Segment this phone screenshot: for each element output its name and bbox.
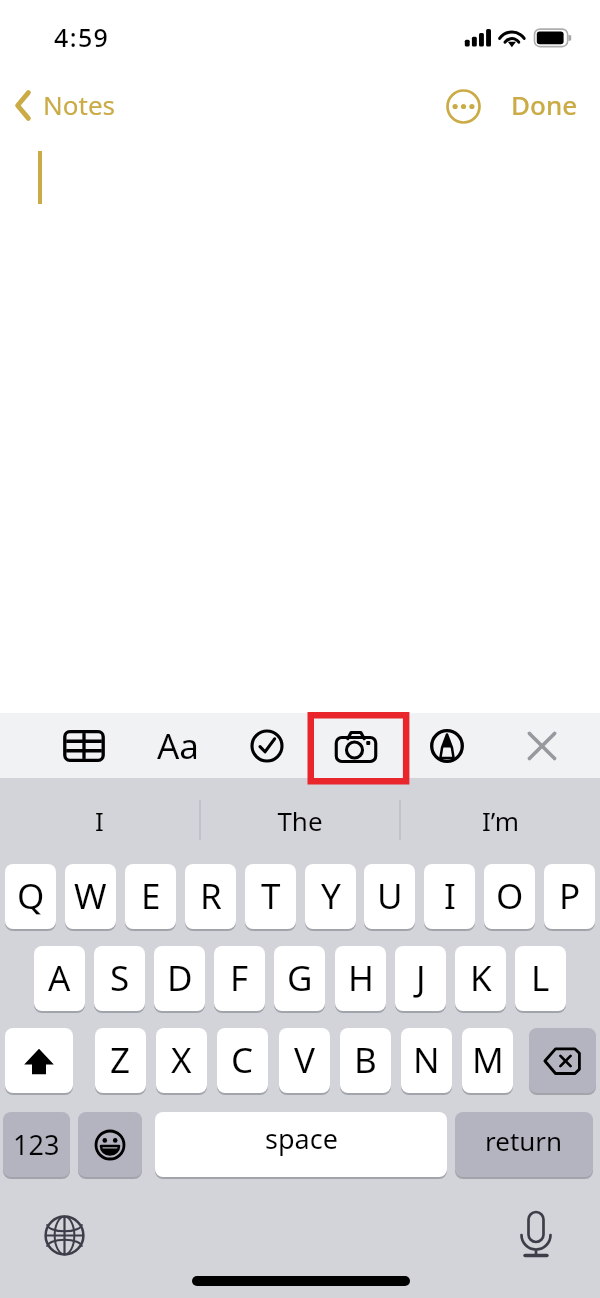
staticText: X <box>171 1036 192 1084</box>
staticText: The <box>277 803 323 838</box>
button[interactable]: I’m <box>400 778 600 862</box>
staticText: K <box>470 954 492 1002</box>
button[interactable]: K <box>455 946 506 1011</box>
button[interactable]: H <box>335 946 386 1011</box>
staticText: G <box>287 954 313 1002</box>
staticText: M <box>472 1036 504 1084</box>
staticText: H <box>348 954 374 1002</box>
staticText: S <box>110 954 130 1002</box>
button[interactable]: Z <box>95 1028 146 1093</box>
button[interactable]: C <box>217 1028 268 1093</box>
staticText: Notes <box>43 87 115 122</box>
button[interactable]: Next keyboard <box>44 1215 85 1256</box>
button[interactable]: A <box>34 946 85 1011</box>
button[interactable]: 123 <box>3 1112 70 1177</box>
button[interactable]: E <box>125 864 176 929</box>
staticText: R <box>200 872 222 920</box>
staticText: L <box>531 954 550 1002</box>
button[interactable]: V <box>279 1028 330 1093</box>
staticText: A <box>48 954 71 1002</box>
button[interactable]: N <box>401 1028 452 1093</box>
button[interactable]: J <box>395 946 446 1011</box>
staticText: B <box>354 1036 377 1084</box>
button[interactable]: Backspace <box>529 1028 596 1093</box>
button[interactable]: I <box>424 864 475 929</box>
button[interactable]: Done <box>511 78 578 130</box>
button[interactable]: Emoji <box>78 1112 142 1177</box>
staticText: U <box>377 872 403 920</box>
button[interactable]: Markup <box>421 713 473 778</box>
button[interactable]: D <box>154 946 205 1011</box>
button[interactable]: Shift <box>5 1028 73 1093</box>
staticText: V <box>294 1036 316 1084</box>
staticText: 4:59 <box>54 20 110 54</box>
staticText: Q <box>17 872 45 920</box>
staticText: P <box>559 872 581 920</box>
button[interactable]: More options <box>441 84 486 129</box>
button[interactable]: Y <box>305 864 356 929</box>
button[interactable]: Camera <box>330 713 382 778</box>
button[interactable]: P <box>544 864 595 929</box>
staticText: D <box>167 954 193 1002</box>
button[interactable]: M <box>462 1028 513 1093</box>
button[interactable]: Notes <box>15 78 115 130</box>
staticText: E <box>141 872 161 920</box>
button[interactable]: X <box>156 1028 207 1093</box>
staticText: Y <box>321 872 341 920</box>
staticText: I’m <box>482 803 519 838</box>
button[interactable]: I <box>0 778 199 862</box>
button[interactable]: Table <box>58 713 110 778</box>
staticText: I <box>95 803 104 838</box>
button[interactable]: O <box>484 864 535 929</box>
staticText: 123 <box>13 1126 60 1163</box>
button[interactable]: R <box>185 864 236 929</box>
staticText: return <box>485 1123 563 1158</box>
button[interactable]: Aa <box>150 713 206 778</box>
staticText: Done <box>511 87 578 122</box>
staticText: Aa <box>157 722 200 770</box>
staticText: Z <box>110 1036 131 1084</box>
button[interactable]: L <box>515 946 566 1011</box>
staticText: N <box>413 1036 440 1084</box>
staticText: O <box>496 872 524 920</box>
staticText: T <box>261 872 281 920</box>
button[interactable]: space <box>155 1112 447 1177</box>
button[interactable]: B <box>340 1028 391 1093</box>
button[interactable]: Dictate <box>518 1217 554 1253</box>
button[interactable]: F <box>214 946 265 1011</box>
button[interactable]: Q <box>5 864 56 929</box>
button[interactable]: T <box>245 864 296 929</box>
button[interactable]: U <box>364 864 415 929</box>
staticText: space <box>265 1120 338 1157</box>
staticText: W <box>74 872 107 920</box>
staticText: J <box>416 954 426 1002</box>
button[interactable]: S <box>94 946 145 1011</box>
button[interactable]: Hide keyboard <box>516 713 568 778</box>
staticText: I <box>444 872 456 920</box>
button[interactable]: The <box>200 778 399 862</box>
staticText: C <box>231 1036 254 1084</box>
button[interactable]: Checklist <box>241 713 293 778</box>
staticText: F <box>230 954 249 1002</box>
button[interactable]: G <box>274 946 325 1011</box>
button[interactable]: W <box>65 864 116 929</box>
button[interactable]: return <box>455 1112 593 1177</box>
